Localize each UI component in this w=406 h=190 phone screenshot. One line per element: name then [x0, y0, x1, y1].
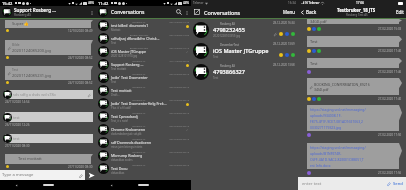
staticText: Send — [393, 181, 403, 187]
staticText: test billed dcuments1 — [111, 23, 149, 28]
button[interactable]: DesemberTest — [193, 40, 295, 61]
button[interactable]: BOOKING_CONFIRMATION_89216 34(4).pdf — [309, 78, 399, 95]
staticText: ..ıl N Telenor — [301, 1, 320, 5]
button[interactable]: Send — [393, 181, 403, 187]
staticText: Testbruker_18 JTS — [337, 7, 376, 13]
button[interactable]: Rosberg AS — [98, 149, 189, 162]
button[interactable]: Send — [87, 171, 95, 179]
staticText: Mottatt — [111, 28, 121, 32]
staticText: 15:42 — [2, 1, 13, 6]
staticText: 20201228103359.jpg — [213, 34, 241, 38]
button[interactable]: Support Rosberg ... — [2, 6, 95, 18]
staticText: 17:56 — [356, 1, 365, 5]
button[interactable]: Test — [7, 66, 91, 80]
staticText: 12/10/2020 08:49 — [68, 29, 93, 33]
staticText: 16:34 — [288, 1, 296, 5]
staticText: ✓ — [186, 51, 189, 54]
button[interactable]: 34(4).pdf — [310, 19, 399, 24]
button[interactable]: More options — [183, 9, 190, 16]
staticText: 4798232455 — [213, 26, 245, 34]
button[interactable]: Bruger/Test/Test — [98, 32, 189, 45]
staticText: Super👍 — [12, 21, 29, 27]
staticText: 46% — [88, 1, 94, 5]
staticText: sds sdfg a dsds wd s78o — [13, 92, 87, 97]
staticText: 02/10/2020 09:10 — [168, 163, 189, 166]
staticText: 20201124085231.jpg — [12, 73, 52, 78]
staticText: 27-02-2020 17:40 — [378, 97, 402, 101]
button[interactable]: Super👍 — [12, 20, 91, 28]
staticText: 27-02-2020 17:56 — [378, 171, 402, 175]
button[interactable]: Bilde — [7, 40, 91, 55]
staticText: Rosberg AS — [220, 22, 235, 26]
button[interactable]: Rosberg AS — [98, 58, 189, 71]
button[interactable]: Test — [310, 58, 399, 68]
staticText: Rosberg AS — [111, 85, 167, 88]
staticText: Rosberg AS — [111, 137, 167, 140]
staticText: Rosberg AS — [111, 111, 167, 114]
button[interactable]: Conversations — [98, 6, 190, 18]
button[interactable]: Home — [127, 180, 159, 190]
button[interactable]: https://staging.vrd.net/messaging/ uploa… — [310, 145, 399, 169]
button[interactable]: Search — [175, 8, 183, 16]
staticText: 20201124085200.jpg — [12, 48, 52, 53]
button[interactable]: Compose — [192, 7, 202, 17]
button[interactable]: Bruker/Test/Test — [98, 45, 189, 58]
staticText: 27-02-2020 17:50 — [378, 133, 402, 137]
staticText: 11:42 — [98, 1, 109, 6]
button[interactable]: Rosberg AS — [98, 162, 189, 175]
button[interactable]: https://staging.vrd.net/messaging/ uploa… — [310, 107, 399, 131]
staticText: Test — [111, 41, 117, 45]
staticText: Bilde — [12, 43, 20, 47]
staticText: Support Rosberg ... — [14, 7, 56, 13]
staticText: Test Cprosdsedj — [111, 114, 138, 119]
staticText: Jodie' Test Docmenter — [111, 75, 148, 80]
staticText: 28-12-2020 13:59 — [273, 42, 295, 46]
button[interactable]: Back — [0, 180, 32, 190]
button[interactable]: Rosberg AS — [193, 61, 295, 82]
button[interactable]: Rosberg AS — [98, 19, 189, 32]
button[interactable]: Type a message — [2, 170, 83, 180]
button[interactable]: Rosberg AS — [98, 71, 189, 84]
staticText: https://staging.vrd.net/messaging/ uploa… — [310, 145, 366, 168]
staticText: 34(4).pdf — [310, 19, 327, 24]
button[interactable]: Home — [32, 180, 64, 190]
staticText: 26/11/2020 12:26 — [5, 123, 30, 127]
staticText: Chrome Krokomenn — [111, 127, 146, 132]
button[interactable]: Rosberg AS — [98, 110, 189, 123]
staticText: 27-02-2020 15:03 — [378, 27, 402, 31]
staticText: Rosberg AS — [111, 98, 167, 101]
button[interactable]: Rosberg AS — [98, 123, 189, 136]
staticText: 20201228101910.jpg — [111, 54, 138, 58]
staticText: 02/10/2020 09:10 — [168, 124, 189, 127]
staticText: Rosberg Test AS — [346, 13, 368, 17]
staticText: Test — [213, 55, 219, 59]
staticText: 27/11/2020 08:30 — [168, 59, 189, 62]
button[interactable]: Rosberg AS — [98, 97, 189, 110]
button[interactable]: sds sdfg a dsds wd s78o — [13, 90, 91, 99]
staticText: Menu — [283, 9, 295, 15]
staticText: ddsasdkas — [111, 171, 125, 175]
staticText: mtsn juim letimgs intiets — [111, 145, 143, 149]
button[interactable]: Test — [310, 36, 399, 47]
button[interactable]: Rosberg AS — [98, 136, 189, 149]
staticText: 02/10/2020 09:10 — [168, 111, 189, 114]
button[interactable]: Test mottatt — [18, 154, 91, 164]
staticText: Plus it' a fil add? — [111, 106, 132, 110]
button[interactable]: Edit — [396, 9, 404, 15]
staticText: Rosberg AS — [111, 150, 167, 153]
button[interactable]: Back — [300, 9, 317, 15]
staticText: Test mottatt — [18, 156, 42, 162]
staticText: Rosberg AS — [111, 72, 167, 75]
staticText: Type a message — [2, 172, 78, 178]
button[interactable]: Menu — [282, 9, 296, 15]
button[interactable]: More options — [88, 9, 95, 16]
staticText: https://staging.vrd.net/messaging/ uploa… — [310, 107, 366, 130]
staticText: iOS Master JTGruppe — [213, 47, 269, 55]
button[interactable]: Rosberg AS — [193, 19, 295, 40]
button[interactable]: Back — [96, 180, 127, 190]
button[interactable]: Rosberg AS — [98, 84, 189, 97]
